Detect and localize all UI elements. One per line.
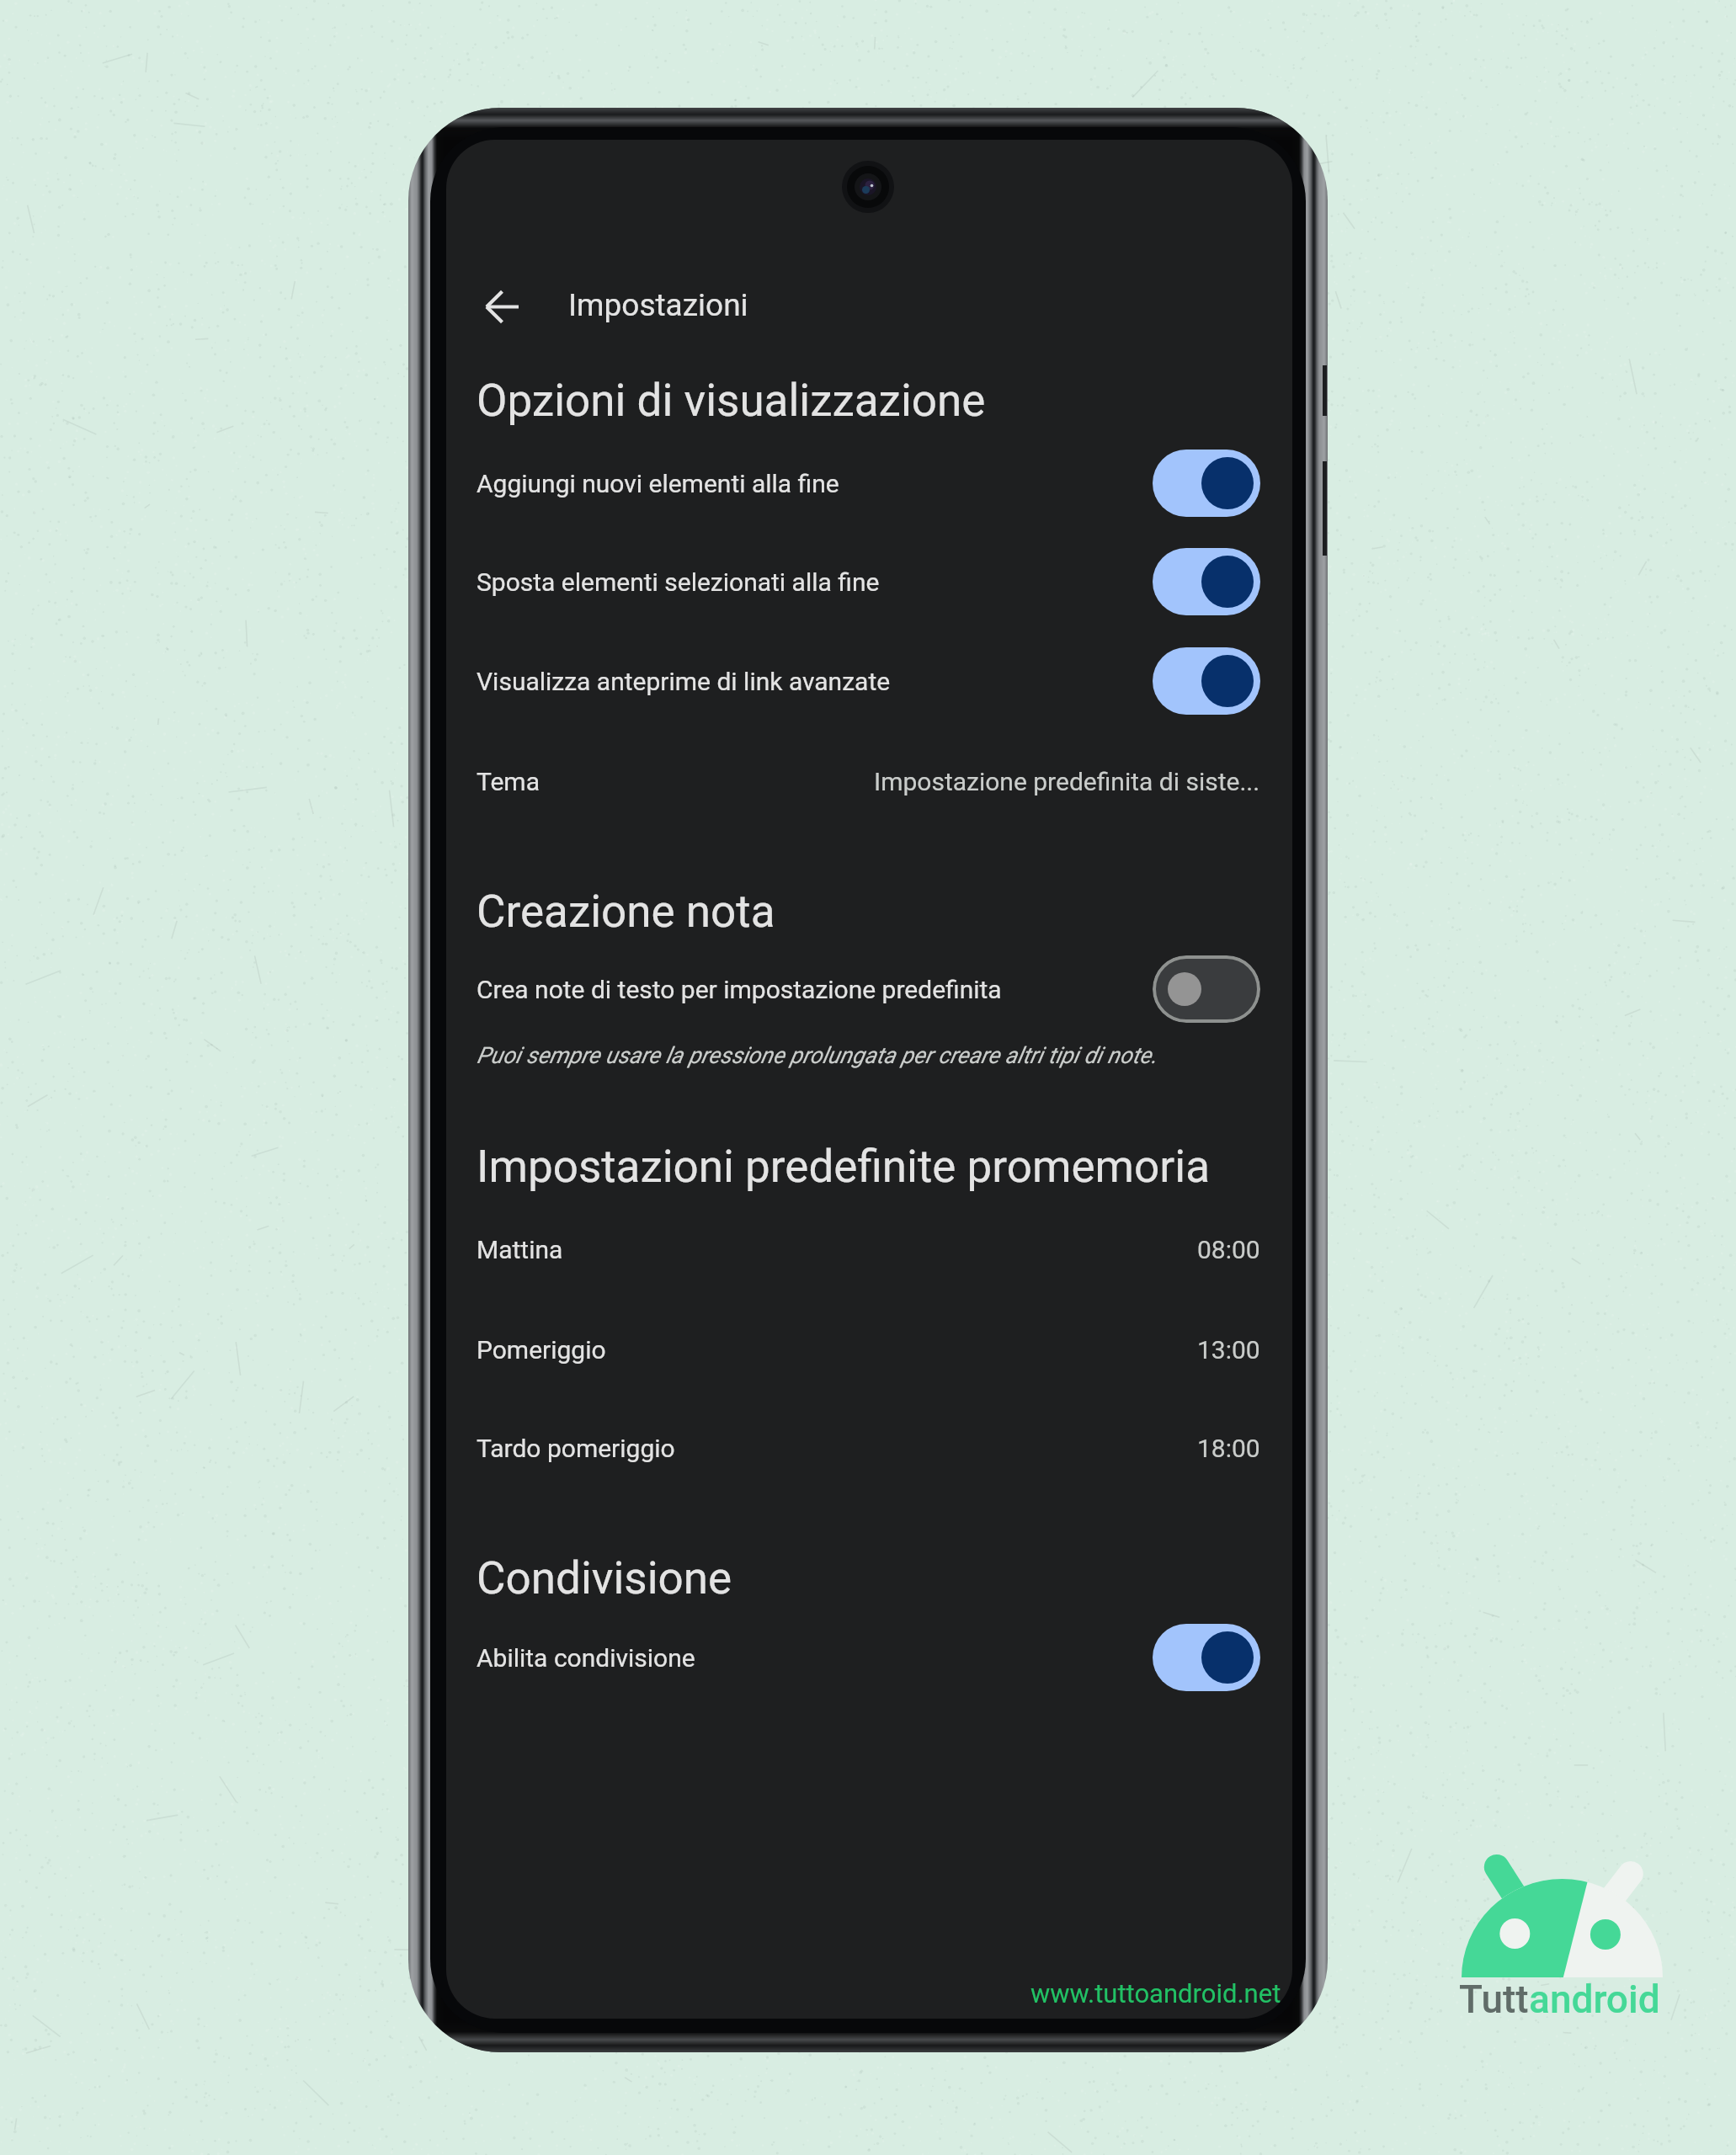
button[interactable]: Visualizza anteprime di link avanzate [446, 639, 1292, 723]
button[interactable]: Crea note di testo per impostazione pred… [446, 947, 1292, 1031]
staticText: Impostazioni [568, 287, 748, 323]
staticText: Creazione nota [477, 886, 775, 938]
button[interactable]: Tardo pomeriggio [446, 1406, 1292, 1490]
staticText: Impostazioni predefinite promemoria [477, 1141, 1210, 1193]
staticText: 18:00 [1197, 1434, 1260, 1463]
staticText: Visualizza anteprime di link avanzate [477, 667, 1153, 696]
staticText: Impostazione predefinita di siste... [874, 767, 1260, 796]
staticText: Pomeriggio [477, 1335, 606, 1365]
staticText: 13:00 [1197, 1335, 1260, 1365]
staticText: 08:00 [1197, 1235, 1260, 1264]
button[interactable]: Aggiungi nuovi elementi alla fine [446, 441, 1292, 525]
staticText: android [1529, 1977, 1660, 2022]
staticText: Sposta elementi selezionati alla fine [477, 567, 1153, 597]
staticText: Tardo pomeriggio [477, 1434, 675, 1463]
button[interactable]: Tema [446, 739, 1292, 823]
button[interactable]: Indietro [463, 268, 541, 345]
staticText: Mattina [477, 1235, 563, 1264]
button[interactable]: Sposta elementi selezionati alla fine [446, 540, 1292, 624]
staticText: Condivisione [477, 1552, 732, 1604]
staticText: www.tuttoandroid.net [1030, 1978, 1281, 2009]
staticText: Aggiungi nuovi elementi alla fine [477, 469, 1153, 498]
staticText: Tutt [1459, 1977, 1529, 2022]
staticText: Puoi sempre usare la pressione prolungat… [477, 1042, 1158, 1069]
staticText: Opzioni di visualizzazione [477, 375, 986, 427]
staticText: Abilita condivisione [477, 1643, 1153, 1673]
staticText: Crea note di testo per impostazione pred… [477, 975, 1153, 1004]
button[interactable]: Pomeriggio [446, 1307, 1292, 1391]
button[interactable]: Abilita condivisione [446, 1615, 1292, 1700]
button[interactable]: Mattina [446, 1207, 1292, 1291]
staticText: Tema [477, 767, 540, 796]
